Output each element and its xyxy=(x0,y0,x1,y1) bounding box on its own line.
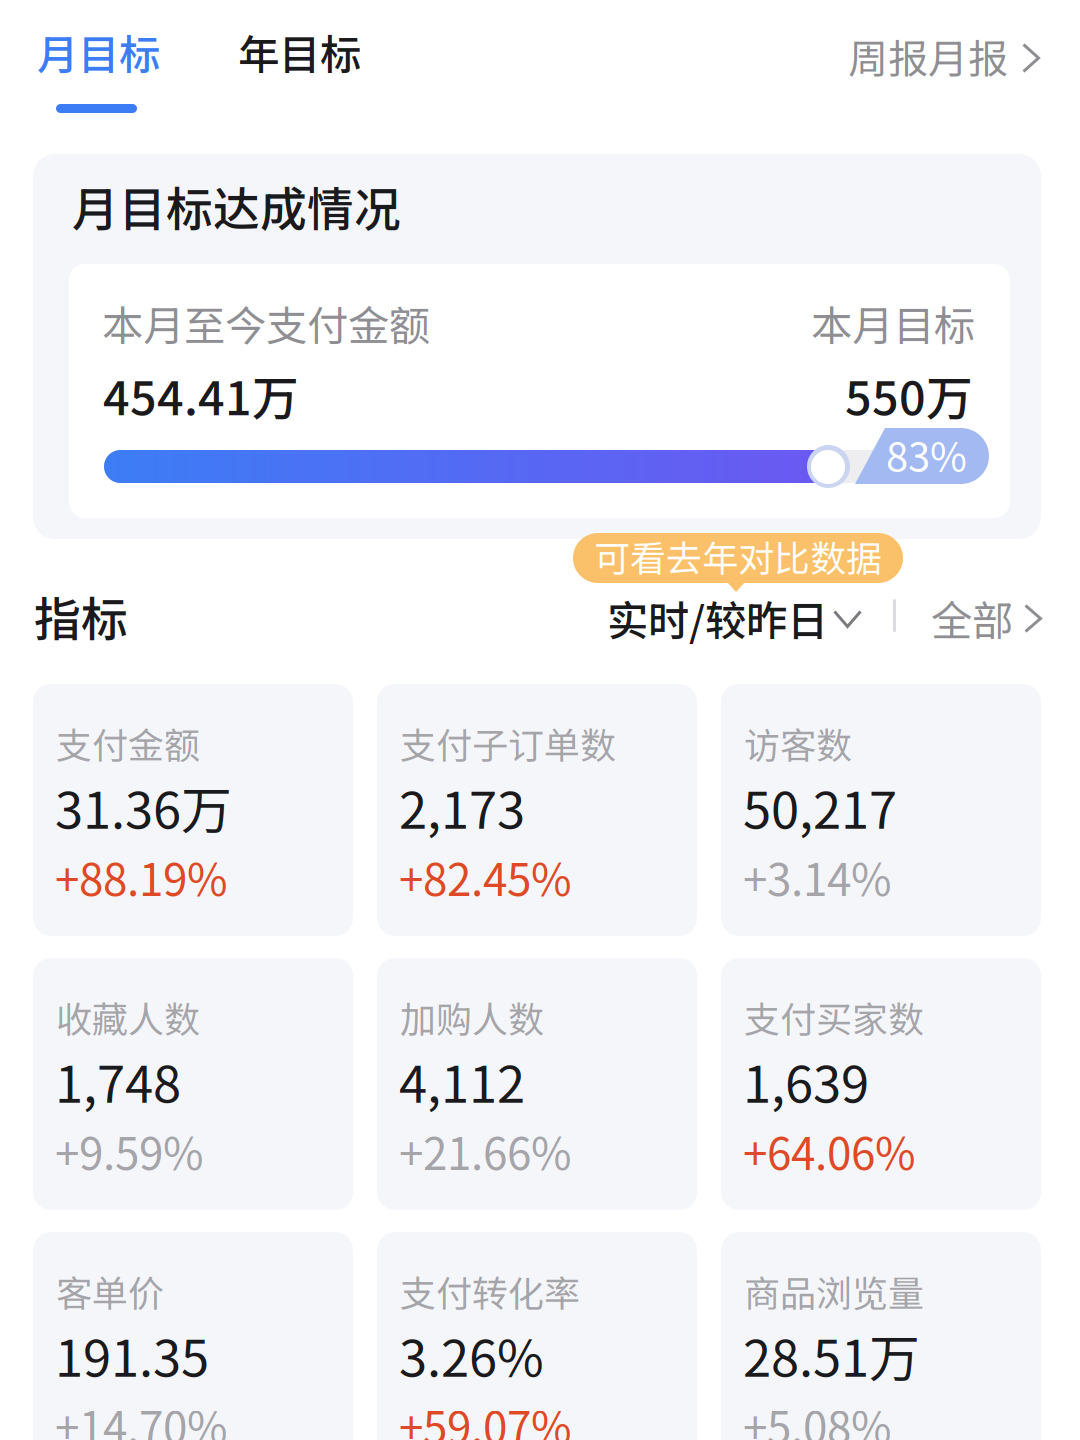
staticText: 31.36万 xyxy=(55,770,232,843)
button[interactable]: 收藏人数 xyxy=(33,958,353,1210)
button[interactable]: 支付买家数 xyxy=(721,958,1041,1210)
button[interactable]: 支付金额 xyxy=(33,684,353,936)
staticText: 本月目标 xyxy=(811,293,975,353)
staticText: 支付转化率 xyxy=(400,1265,580,1317)
staticText: 本月至今支付金额 xyxy=(102,293,430,353)
staticText: 50,217 xyxy=(743,770,897,843)
staticText: 83% xyxy=(886,425,967,483)
staticText: +21.66% xyxy=(399,1119,572,1183)
staticText: 周报月报 xyxy=(848,27,1008,85)
staticText: 支付子订单数 xyxy=(400,717,616,769)
staticText: 年目标 xyxy=(238,22,361,82)
staticText: +5.08% xyxy=(743,1393,892,1440)
staticText: 商品浏览量 xyxy=(744,1265,924,1317)
staticText: 实时/较昨日 xyxy=(607,588,828,648)
button[interactable]: 客单价 xyxy=(33,1232,353,1440)
staticText: 454.41万 xyxy=(103,361,299,429)
button[interactable]: 加购人数 xyxy=(377,958,697,1210)
staticText: +82.45% xyxy=(399,845,572,909)
staticText: 收藏人数 xyxy=(56,991,200,1043)
button[interactable]: 支付转化率 xyxy=(377,1232,697,1440)
staticText: 1,639 xyxy=(743,1044,869,1117)
staticText: +14.70% xyxy=(55,1393,228,1440)
staticText: 28.51万 xyxy=(743,1318,920,1391)
staticText: 191.35 xyxy=(55,1318,209,1391)
staticText: 月目标 xyxy=(37,22,160,82)
staticText: 全部 xyxy=(931,588,1013,648)
button[interactable]: 商品浏览量 xyxy=(721,1232,1041,1440)
staticText: 支付金额 xyxy=(56,717,200,769)
staticText: 3.26% xyxy=(399,1318,544,1391)
button[interactable]: 月目标 xyxy=(37,22,165,120)
staticText: 访客数 xyxy=(744,717,852,769)
button[interactable]: 全部 xyxy=(931,588,1041,642)
staticText: +3.14% xyxy=(743,845,892,909)
staticText: 4,112 xyxy=(399,1044,525,1117)
staticText: +9.59% xyxy=(55,1119,204,1183)
staticText: +59.07% xyxy=(399,1393,572,1440)
staticText: 1,748 xyxy=(55,1044,181,1117)
staticText: +64.06% xyxy=(743,1119,916,1183)
button[interactable]: 支付子订单数 xyxy=(377,684,697,936)
button[interactable]: 年目标 xyxy=(238,22,370,84)
staticText: +88.19% xyxy=(55,845,228,909)
staticText: 加购人数 xyxy=(400,991,544,1043)
button[interactable]: 实时/较昨日 xyxy=(607,588,853,642)
staticText: 支付买家数 xyxy=(744,991,924,1043)
staticText: 2,173 xyxy=(399,770,525,843)
staticText: 指标 xyxy=(34,582,128,650)
staticText: 550万 xyxy=(845,361,973,429)
button[interactable]: 周报月报 xyxy=(848,27,1042,89)
button[interactable]: 访客数 xyxy=(721,684,1041,936)
staticText: 可看去年对比数据 xyxy=(594,530,882,582)
staticText: 客单价 xyxy=(56,1265,164,1317)
staticText: 月目标达成情况 xyxy=(72,172,401,240)
